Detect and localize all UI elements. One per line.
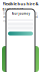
staticText: Book coaches, minibuses and cars from tr… (3, 12, 38, 22)
staticText: Flexible bus hire & transport (2, 1, 38, 12)
button[interactable] (6, 31, 35, 35)
staticText: Your journey (11, 12, 29, 15)
